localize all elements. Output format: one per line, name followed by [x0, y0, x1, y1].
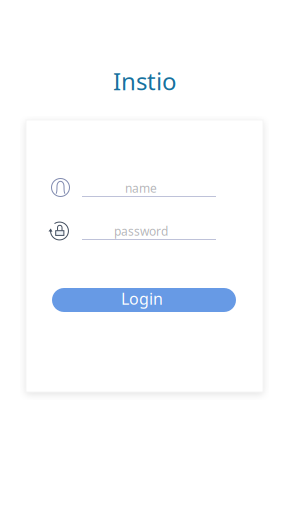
- staticText: Login: [121, 288, 163, 309]
- button[interactable]: password: [82, 222, 216, 244]
- staticText: name: [125, 180, 157, 196]
- staticText: password: [114, 223, 168, 239]
- staticText: Instio: [113, 65, 177, 97]
- button[interactable]: Login: [52, 288, 236, 312]
- button[interactable]: name: [82, 179, 216, 201]
